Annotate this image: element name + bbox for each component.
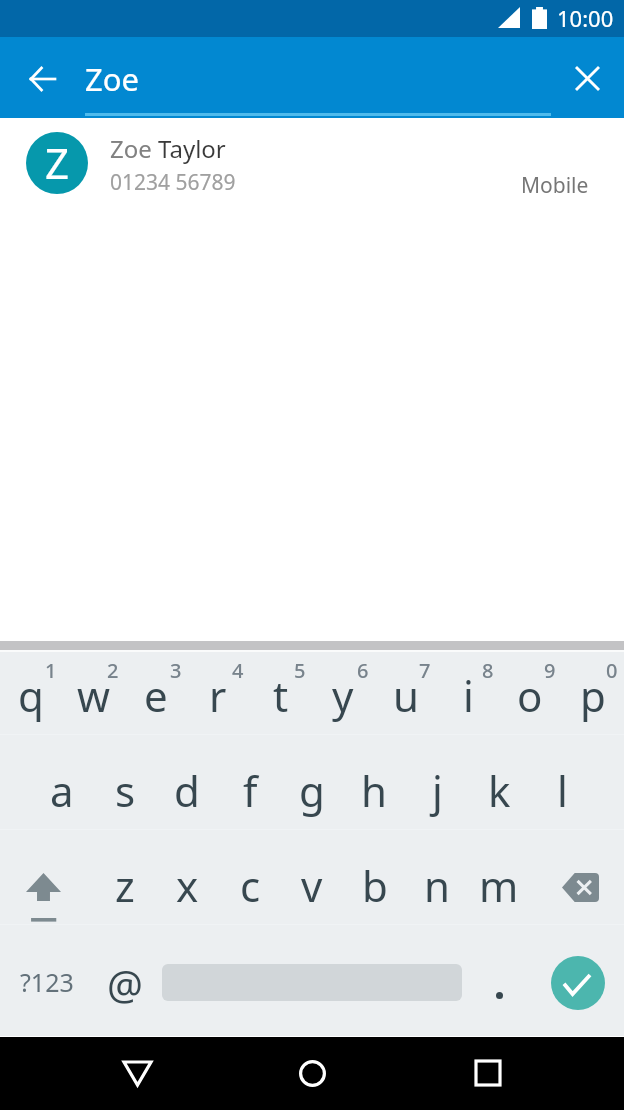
staticText: 8 [482, 657, 494, 684]
staticText: Mobile [521, 171, 589, 200]
button[interactable]: b [344, 837, 406, 931]
staticText: 4 [232, 657, 244, 684]
staticText: h [361, 762, 387, 819]
staticText: 6 [357, 657, 369, 684]
staticText: 01234 56789 [110, 168, 236, 197]
staticText: 0 [606, 657, 618, 684]
button[interactable]: w [63, 647, 125, 741]
button[interactable]: a [31, 742, 93, 836]
button[interactable]: m [468, 837, 530, 931]
staticText: x [176, 857, 199, 914]
button[interactable]: Home [276, 1037, 348, 1109]
staticText: 5 [294, 657, 306, 684]
staticText: 7 [419, 657, 431, 684]
button[interactable]: y [312, 647, 374, 741]
button[interactable]: q [0, 647, 62, 741]
button[interactable]: v [281, 837, 343, 931]
button[interactable]: j [406, 742, 468, 836]
staticText: k [488, 762, 511, 819]
button[interactable]: f [219, 742, 281, 836]
button[interactable]: e [125, 647, 187, 741]
staticText: w [77, 667, 111, 724]
staticText: c [240, 857, 261, 914]
button[interactable]: Back [6, 43, 78, 109]
button[interactable]: o [499, 647, 561, 741]
button[interactable]: ?123 [0, 938, 94, 1032]
staticText: s [115, 762, 136, 819]
button[interactable] [469, 938, 531, 1032]
button[interactable]: Backspace [530, 843, 624, 937]
staticText: e [144, 667, 168, 724]
button[interactable]: k [468, 742, 530, 836]
staticText: 2 [107, 657, 119, 684]
staticText: Zoe [85, 58, 139, 100]
staticText: y [332, 667, 354, 724]
staticText: z [115, 857, 135, 914]
staticText: 9 [544, 657, 556, 684]
staticText: f [243, 762, 258, 819]
staticText: p [580, 667, 606, 724]
staticText: Z [45, 134, 70, 191]
button[interactable]: @ [94, 938, 156, 1032]
staticText: 10:00 [557, 3, 614, 33]
staticText: @ [107, 957, 143, 1011]
button[interactable]: Back [101, 1037, 173, 1109]
staticText: o [517, 667, 543, 724]
button[interactable]: Recents [452, 1037, 524, 1109]
button[interactable]: g [281, 742, 343, 836]
staticText: b [362, 857, 388, 914]
staticText: i [463, 667, 474, 724]
staticText: r [209, 667, 227, 724]
button[interactable]: c [219, 837, 281, 931]
button[interactable]: i [437, 647, 499, 741]
button[interactable]: n [406, 837, 468, 931]
staticText: n [424, 857, 450, 914]
staticText: u [393, 667, 419, 724]
button[interactable]: d [156, 742, 218, 836]
button[interactable]: Z [0, 118, 624, 210]
button[interactable]: Done [551, 956, 605, 1010]
button[interactable]: s [94, 742, 156, 836]
button[interactable]: Clear search [552, 42, 618, 112]
staticText: a [50, 762, 74, 819]
button[interactable]: r [187, 647, 249, 741]
staticText: 1 [45, 657, 57, 684]
button[interactable]: Shift [0, 843, 94, 937]
staticText: q [18, 667, 44, 724]
staticText: l [557, 762, 568, 819]
button[interactable]: z [94, 837, 156, 931]
button[interactable]: u [375, 647, 437, 741]
staticText: m [479, 857, 519, 914]
staticText: v [301, 857, 323, 914]
button[interactable]: t [250, 647, 312, 741]
staticText: ?123 [20, 965, 74, 999]
staticText: Zoe Taylor [110, 132, 226, 165]
staticText: 3 [170, 657, 182, 684]
staticText: d [174, 762, 200, 819]
button[interactable]: x [156, 837, 218, 931]
staticText: j [432, 762, 443, 819]
button[interactable]: l [531, 742, 593, 836]
button[interactable]: h [343, 742, 405, 836]
staticText: g [299, 762, 325, 819]
button[interactable]: p [562, 647, 624, 741]
staticText: t [273, 667, 289, 724]
